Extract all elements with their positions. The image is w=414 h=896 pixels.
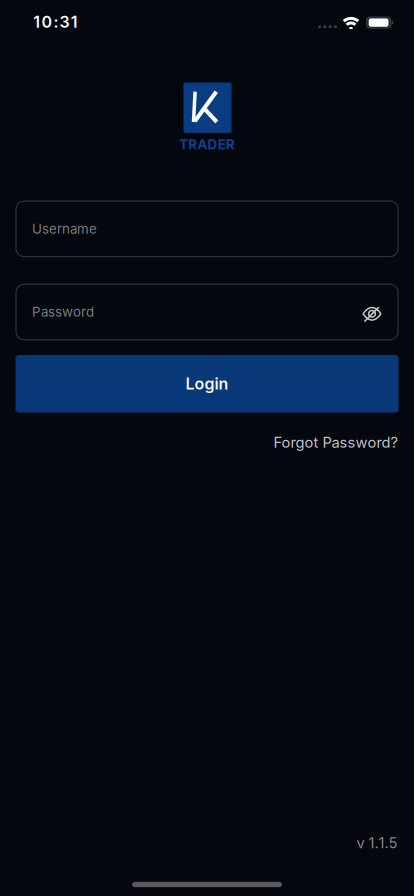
staticText: 3	[60, 13, 70, 31]
button[interactable]: Password	[16, 284, 398, 340]
button[interactable]: Login	[15, 355, 398, 413]
button[interactable]: Username	[16, 201, 398, 257]
staticText: Password	[32, 304, 94, 320]
staticText: D	[208, 137, 218, 152]
staticText: Forgot Password?	[273, 434, 397, 451]
staticText: R	[188, 137, 197, 152]
staticText: .	[374, 834, 378, 852]
staticText: 1	[368, 834, 374, 852]
staticText: 1	[33, 13, 40, 31]
staticText: T	[179, 137, 188, 152]
staticText: 0	[41, 13, 52, 31]
staticText: 1	[378, 834, 384, 852]
staticText: 1	[71, 13, 78, 31]
button[interactable]: Forgot Password?	[0, 434, 414, 451]
staticText: :	[53, 13, 58, 31]
staticText	[364, 834, 368, 852]
staticText: A	[197, 137, 207, 152]
staticText: v	[356, 834, 364, 852]
staticText: .	[384, 834, 388, 852]
staticText: R	[226, 137, 235, 152]
staticText: 5	[388, 834, 397, 852]
staticText: Username	[32, 221, 97, 237]
staticText: E	[218, 137, 226, 152]
staticText: Login	[185, 374, 228, 393]
